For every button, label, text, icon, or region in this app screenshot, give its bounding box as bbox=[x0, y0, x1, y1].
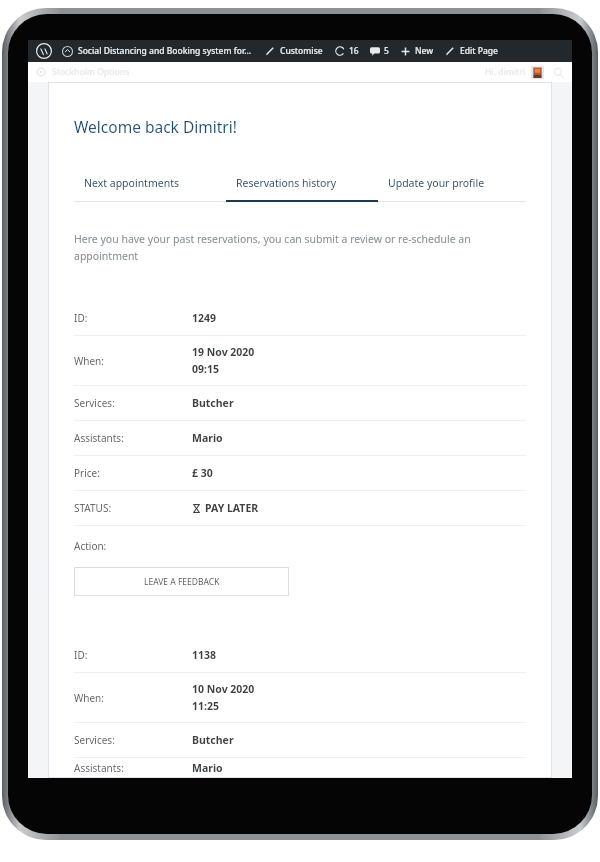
staticText: 1249 bbox=[192, 311, 217, 325]
button[interactable]: LEAVE A FEEDBACK bbox=[74, 567, 289, 596]
staticText: LEAVE A FEEDBACK bbox=[144, 576, 220, 588]
button[interactable]: WordPress bbox=[36, 43, 52, 59]
staticText: New bbox=[415, 45, 434, 57]
staticText: ID: bbox=[74, 648, 88, 662]
button[interactable]: Account bbox=[531, 66, 544, 79]
staticText: Update your profile bbox=[388, 176, 485, 190]
staticText: Action: bbox=[74, 539, 107, 553]
staticText: 11:25 bbox=[192, 699, 219, 713]
button[interactable]: Edit Page bbox=[445, 45, 498, 57]
staticText: Social Distancing and Booking system for… bbox=[78, 45, 252, 57]
staticText: Butcher bbox=[192, 733, 234, 747]
button[interactable]: Search bbox=[553, 67, 564, 78]
staticText: Customise bbox=[280, 45, 323, 57]
staticText: When: bbox=[74, 354, 104, 368]
staticText: When: bbox=[74, 691, 104, 705]
staticText: 09:15 bbox=[192, 362, 219, 376]
staticText: 5 bbox=[384, 45, 389, 57]
staticText: Reservations history bbox=[236, 176, 337, 190]
staticText: Services: bbox=[74, 396, 115, 410]
staticText: Hi, dimitri bbox=[485, 66, 526, 78]
button[interactable]: Social Distancing and Booking system for… bbox=[62, 45, 252, 57]
staticText: 10 Nov 2020 bbox=[192, 682, 255, 696]
button[interactable]: 16 bbox=[335, 45, 359, 57]
staticText: PAY LATER bbox=[205, 501, 259, 515]
staticText: Next appointments bbox=[84, 176, 179, 190]
button[interactable]: Options bbox=[36, 67, 46, 77]
staticText: STATUS: bbox=[74, 501, 112, 515]
button[interactable]: Customise bbox=[265, 45, 323, 57]
staticText: Stockholm Options bbox=[52, 66, 130, 78]
staticText: 1138 bbox=[192, 648, 217, 662]
staticText: Assistants: bbox=[74, 431, 124, 445]
button[interactable]: New bbox=[400, 45, 434, 57]
staticText: Edit Page bbox=[460, 45, 498, 57]
staticText: Welcome back Dimitri! bbox=[74, 116, 237, 137]
staticText: ID: bbox=[74, 311, 88, 325]
staticText: 19 Nov 2020 bbox=[192, 345, 255, 359]
staticText: Assistants: bbox=[74, 761, 124, 775]
button[interactable]: Update your profile bbox=[378, 170, 526, 196]
button[interactable]: Reservations history bbox=[226, 170, 378, 196]
staticText: Mario bbox=[192, 431, 223, 445]
staticText: Here you have your past reservations, yo… bbox=[74, 232, 526, 263]
staticText: £ 30 bbox=[192, 466, 213, 480]
staticText: Price: bbox=[74, 466, 100, 480]
staticText: 16 bbox=[349, 45, 359, 57]
staticText: Services: bbox=[74, 733, 115, 747]
button[interactable]: Next appointments bbox=[74, 170, 226, 196]
staticText: Mario bbox=[192, 761, 223, 775]
staticText: Butcher bbox=[192, 396, 234, 410]
button[interactable]: 5 bbox=[370, 45, 389, 57]
